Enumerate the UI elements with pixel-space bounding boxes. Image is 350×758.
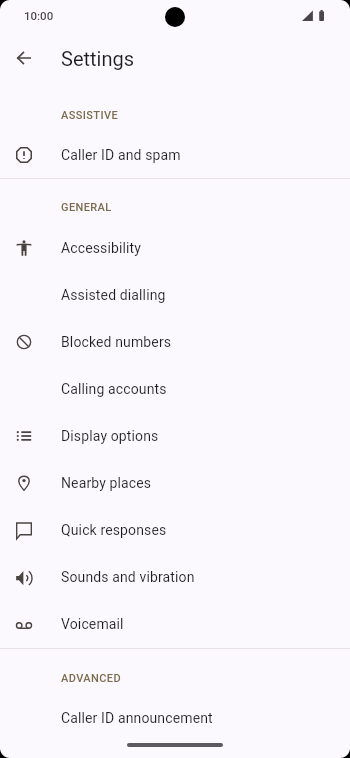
button[interactable]: Sounds and vibration (0, 553, 350, 600)
button[interactable]: Accessibility (0, 224, 350, 271)
button[interactable]: Display options (0, 412, 350, 459)
staticText: 10:00 (24, 9, 54, 22)
staticText: Calling accounts (61, 381, 167, 397)
staticText: Display options (61, 428, 159, 444)
staticText: Settings (61, 47, 135, 70)
staticText: Voicemail (61, 616, 124, 632)
button[interactable]: Caller ID announcement (0, 694, 350, 741)
staticText: Sounds and vibration (61, 569, 195, 585)
staticText: GENERAL (61, 201, 112, 214)
button[interactable]: Voicemail (0, 600, 350, 647)
button[interactable]: Quick responses (0, 506, 350, 553)
button[interactable]: Calling accounts (0, 365, 350, 412)
staticText: Assisted dialling (61, 287, 166, 303)
button[interactable]: Blocked numbers (0, 318, 350, 365)
button[interactable]: Caller ID and spam (0, 131, 350, 178)
staticText: Caller ID announcement (61, 710, 213, 726)
staticText: Nearby places (61, 475, 152, 491)
button[interactable]: Nearby places (0, 459, 350, 506)
staticText: Accessibility (61, 240, 142, 256)
staticText: Blocked numbers (61, 334, 172, 350)
button[interactable]: Back (0, 34, 48, 82)
button[interactable]: Assisted dialling (0, 271, 350, 318)
staticText: ASSISTIVE (61, 109, 119, 122)
staticText: ADVANCED (61, 672, 122, 685)
staticText: Caller ID and spam (61, 147, 181, 163)
staticText: Quick responses (61, 522, 167, 538)
